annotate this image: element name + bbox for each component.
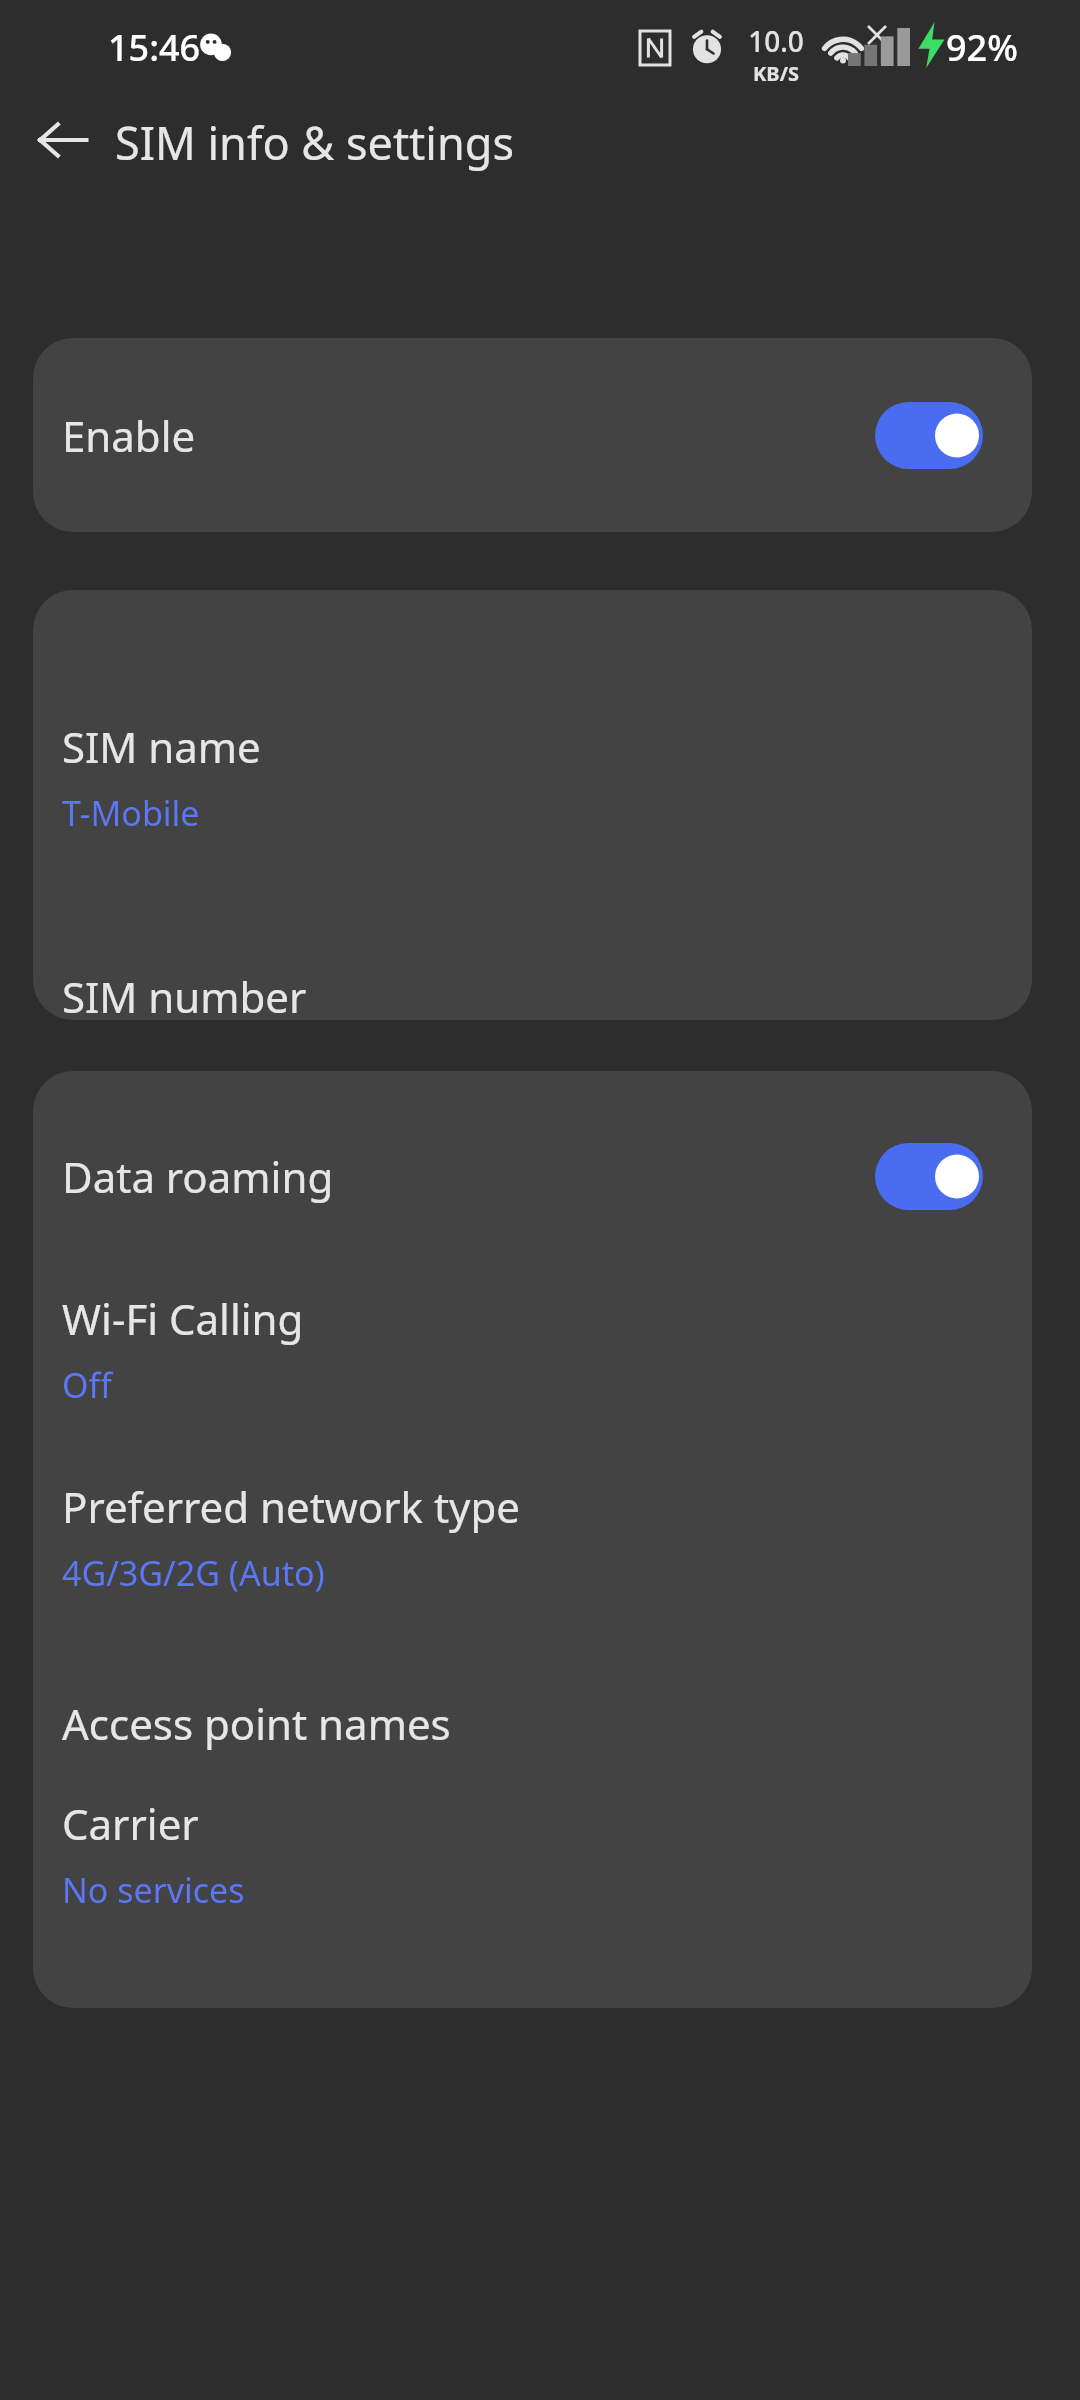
- button[interactable]: SIM number: [33, 906, 1032, 1020]
- staticText: T-Mobile: [62, 790, 200, 836]
- button[interactable]: Toggle: [875, 1143, 983, 1210]
- button[interactable]: Back: [18, 95, 108, 185]
- button[interactable]: Carrier: [33, 1786, 1032, 1920]
- button[interactable]: Toggle: [875, 402, 983, 469]
- staticText: SIM info & settings: [115, 112, 515, 173]
- staticText: 15:46: [108, 23, 201, 72]
- staticText: Off: [62, 1362, 112, 1408]
- staticText: 92%: [946, 23, 1018, 72]
- staticText: KB/S: [753, 60, 799, 87]
- staticText: SIM name: [62, 718, 261, 775]
- staticText: Access point names: [62, 1695, 451, 1752]
- staticText: Data roaming: [62, 1148, 334, 1205]
- button[interactable]: Wi-Fi Calling: [33, 1281, 1032, 1469]
- button[interactable]: Preferred network type: [33, 1469, 1032, 1661]
- button[interactable]: Data roaming: [33, 1071, 1032, 1281]
- staticText: 4G/3G/2G (Auto): [62, 1550, 325, 1596]
- staticText: Carrier: [62, 1795, 199, 1852]
- button[interactable]: Access point names: [33, 1661, 1032, 1786]
- staticText: Wi-Fi Calling: [62, 1290, 304, 1347]
- staticText: 10.0: [748, 22, 804, 60]
- staticText: Preferred network type: [62, 1478, 521, 1535]
- button[interactable]: Enable: [33, 338, 1032, 532]
- staticText: Enable: [62, 407, 196, 464]
- staticText: SIM number: [62, 968, 307, 1020]
- button[interactable]: SIM name: [33, 590, 1032, 906]
- staticText: No services: [62, 1867, 245, 1913]
